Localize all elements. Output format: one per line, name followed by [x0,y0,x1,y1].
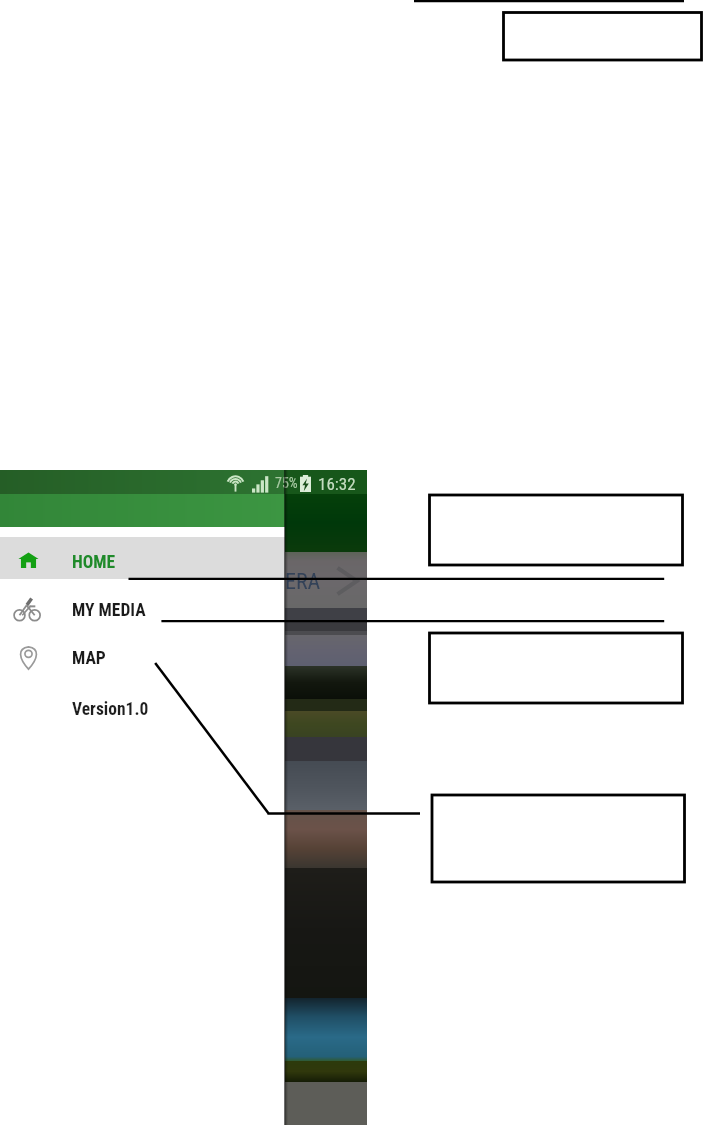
button[interactable]: MAP [0,633,285,675]
button[interactable]: HOME [0,537,285,579]
staticText: Version1.0 [72,699,149,720]
staticText: HOME [72,552,116,573]
staticText: MAP [72,648,106,669]
staticText: 75% [275,475,298,491]
staticText: MY MEDIA [72,600,146,621]
button[interactable]: MY MEDIA [0,585,285,627]
staticText: ERA [285,569,321,595]
staticText: 16:32 [318,474,356,494]
